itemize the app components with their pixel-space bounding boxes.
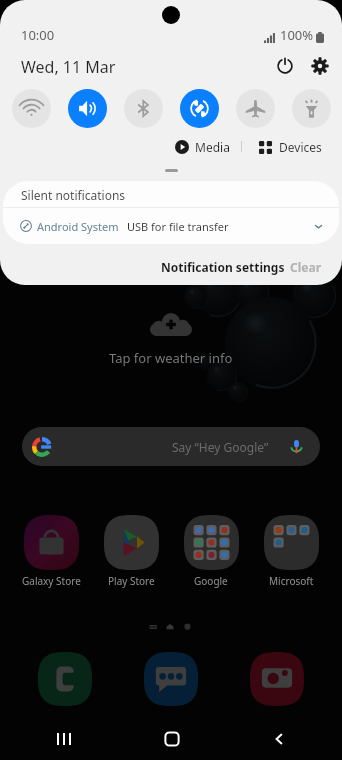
button[interactable]: Auto rotate <box>180 89 219 128</box>
staticText: Galaxy Store <box>22 574 81 588</box>
button[interactable]: Android System <box>3 208 339 244</box>
staticText: Wed, 11 Mar <box>21 56 116 78</box>
button[interactable]: Flashlight <box>292 89 331 128</box>
button[interactable]: Recent apps <box>10 718 118 760</box>
staticText: Google <box>194 574 228 588</box>
button[interactable]: Notification settings <box>155 255 291 279</box>
button[interactable]: Phone <box>38 652 92 706</box>
staticText: Devices <box>279 139 322 155</box>
staticText: USB for file transfer <box>127 219 229 234</box>
staticText: 100% <box>280 26 314 44</box>
staticText: Microsoft <box>269 574 314 588</box>
button[interactable]: Devices <box>255 139 322 155</box>
staticText: Notification settings <box>161 259 285 275</box>
button[interactable]: Sound <box>68 89 107 128</box>
staticText: 10:00 <box>21 26 55 44</box>
staticText: Media <box>195 139 230 155</box>
button[interactable]: Home <box>118 718 225 760</box>
button[interactable]: Settings <box>305 51 334 80</box>
button[interactable]: Galaxy Store <box>11 515 91 588</box>
button[interactable]: Messages <box>144 652 198 706</box>
button[interactable]: Tap for weather info <box>109 349 233 367</box>
button[interactable]: Play Store <box>91 515 171 588</box>
staticText: Play Store <box>108 574 155 588</box>
staticText: Clear <box>290 259 321 275</box>
button[interactable]: Say “Hey Google” <box>22 427 320 466</box>
button[interactable]: Microsoft <box>251 515 331 588</box>
button[interactable]: Wi-Fi <box>12 89 51 128</box>
button[interactable]: Bluetooth <box>124 89 163 128</box>
button[interactable]: Airplane mode <box>236 89 275 128</box>
button[interactable]: Media <box>171 139 230 155</box>
button[interactable]: Back <box>225 718 332 760</box>
button[interactable]: Google <box>171 515 251 588</box>
staticText: Say “Hey Google” <box>172 439 269 455</box>
button[interactable]: Clear <box>284 255 327 279</box>
staticText: Android System <box>37 219 119 234</box>
button[interactable]: Power <box>270 51 299 80</box>
button[interactable]: Camera <box>250 652 304 706</box>
button[interactable]: Weather <box>150 312 192 336</box>
staticText: Silent notifications <box>21 187 126 203</box>
